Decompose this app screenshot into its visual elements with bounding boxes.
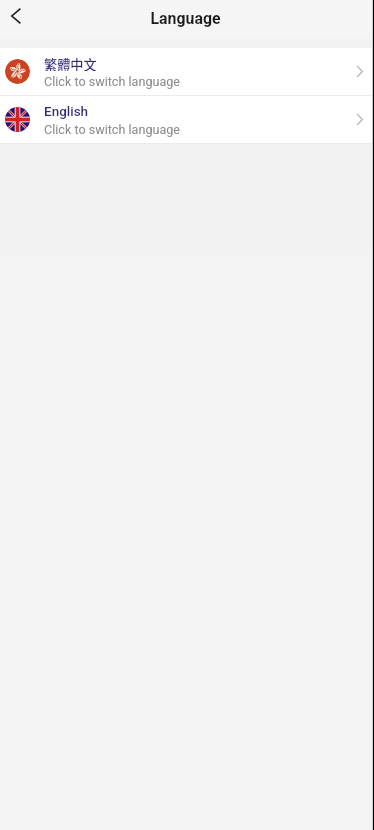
staticText: Click to switch language xyxy=(44,122,181,137)
staticText: 繁體中文 xyxy=(44,55,97,71)
staticText: English xyxy=(44,103,89,119)
button[interactable]: Back xyxy=(0,1,30,31)
button[interactable]: 繁體中文 xyxy=(0,48,374,95)
staticText: Language xyxy=(150,9,221,28)
button[interactable]: English xyxy=(0,96,374,143)
staticText: Click to switch language xyxy=(44,74,181,89)
